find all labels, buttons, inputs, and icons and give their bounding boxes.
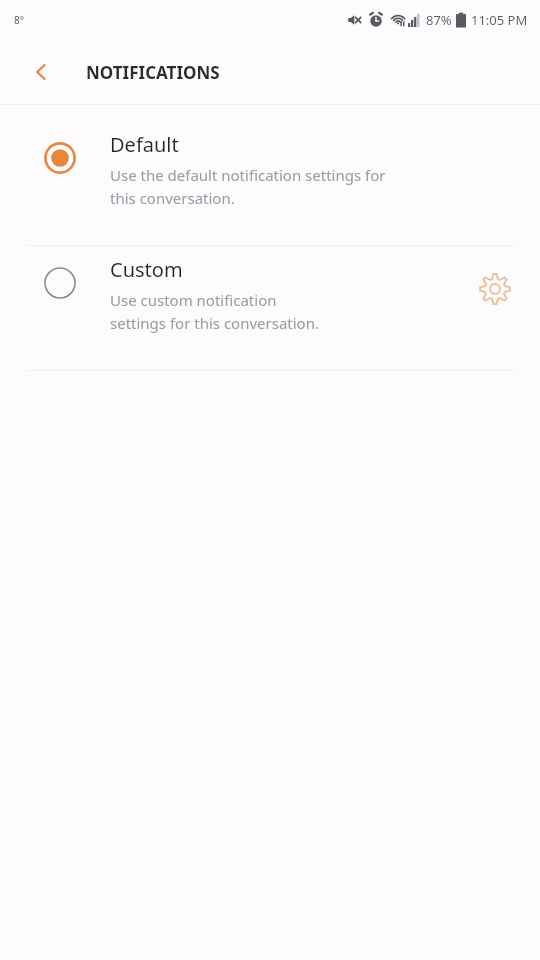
- staticText: NOTIFICATIONS: [86, 61, 220, 84]
- staticText: settings for this conversation.: [110, 313, 319, 333]
- button[interactable]: Default: [0, 121, 540, 245]
- staticText: Use custom notification: [110, 290, 277, 310]
- staticText: Use the default notification settings fo…: [110, 165, 386, 185]
- staticText: 8°: [14, 13, 24, 27]
- staticText: 11:05 PM: [471, 11, 528, 29]
- staticText: this conversation.: [110, 188, 235, 208]
- button[interactable]: Back: [18, 49, 64, 95]
- staticText: 87%: [426, 11, 452, 29]
- button[interactable]: Custom notification settings: [450, 246, 540, 370]
- button[interactable]: Custom: [0, 246, 540, 370]
- staticText: Custom: [110, 256, 183, 283]
- staticText: Default: [110, 131, 179, 158]
